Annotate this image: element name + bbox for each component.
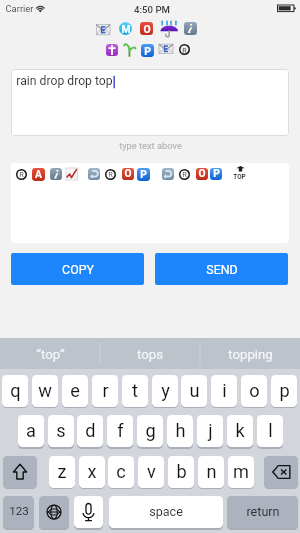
- staticText: P: [213, 168, 220, 180]
- staticText: d: [85, 420, 96, 441]
- staticText: type text above: [119, 140, 182, 151]
- button[interactable]: y: [152, 375, 178, 407]
- button[interactable]: Shift: [3, 456, 37, 488]
- staticText: b: [176, 461, 187, 482]
- staticText: f: [117, 420, 124, 441]
- button[interactable]: n: [198, 456, 224, 488]
- staticText: t: [132, 380, 138, 401]
- button[interactable]: v: [138, 456, 164, 488]
- button[interactable]: b: [168, 456, 194, 488]
- button[interactable]: space: [109, 496, 223, 528]
- staticText: SEND: [206, 262, 238, 277]
- button[interactable]: h: [167, 415, 193, 447]
- button[interactable]: m: [228, 456, 254, 488]
- staticText: space: [149, 504, 183, 519]
- button[interactable]: return: [227, 496, 298, 528]
- staticText: R: [108, 170, 113, 179]
- staticText: i: [222, 380, 227, 401]
- button[interactable]: j: [197, 415, 223, 447]
- staticText: topping: [228, 347, 273, 362]
- button[interactable]: [11, 69, 289, 136]
- staticText: m: [233, 461, 249, 482]
- button[interactable]: Dictate: [74, 496, 103, 528]
- button[interactable]: SEND: [155, 253, 288, 285]
- staticText: o: [249, 380, 260, 401]
- staticText: R: [19, 170, 24, 179]
- staticText: A: [35, 169, 42, 181]
- staticText: q: [10, 380, 21, 401]
- staticText: a: [26, 420, 36, 441]
- staticText: p: [279, 380, 290, 401]
- staticText: e: [70, 380, 80, 401]
- staticText: l: [268, 420, 273, 441]
- button[interactable]: Change keyboard: [39, 496, 69, 528]
- button[interactable]: c: [108, 456, 134, 488]
- button[interactable]: q: [2, 375, 28, 407]
- staticText: O: [198, 168, 206, 180]
- button[interactable]: z: [49, 456, 75, 488]
- button[interactable]: COPY: [11, 253, 144, 285]
- staticText: y: [161, 380, 170, 401]
- staticText: k: [235, 420, 245, 441]
- button[interactable]: [11, 163, 289, 243]
- button[interactable]: f: [107, 415, 133, 447]
- staticText: c: [116, 461, 126, 482]
- button[interactable]: g: [137, 415, 163, 447]
- staticText: u: [189, 380, 200, 401]
- staticText: n: [206, 461, 217, 482]
- staticText: v: [147, 461, 156, 482]
- staticText: w: [38, 380, 52, 401]
- button[interactable]: t: [122, 375, 148, 407]
- staticText: TOP: [233, 173, 246, 181]
- staticText: O: [143, 23, 151, 35]
- button[interactable]: Backspace: [264, 456, 298, 488]
- button[interactable]: o: [241, 375, 267, 407]
- staticText: rain drop drop top: [16, 74, 113, 88]
- staticText: tops: [137, 347, 163, 362]
- staticText: “top”: [36, 347, 65, 362]
- staticText: P: [140, 169, 147, 181]
- button[interactable]: x: [79, 456, 105, 488]
- button[interactable]: 123: [3, 496, 34, 528]
- staticText: j: [208, 420, 213, 441]
- button[interactable]: s: [48, 415, 74, 447]
- button[interactable]: k: [227, 415, 253, 447]
- button[interactable]: a: [18, 415, 44, 447]
- staticText: g: [145, 420, 156, 441]
- button[interactable]: p: [271, 375, 297, 407]
- staticText: 123: [9, 504, 29, 518]
- staticText: 4:50 PM: [134, 4, 170, 15]
- staticText: z: [57, 461, 67, 482]
- staticText: r: [102, 380, 109, 401]
- staticText: x: [87, 461, 97, 482]
- staticText: Carrier: [5, 3, 34, 14]
- button[interactable]: l: [257, 415, 283, 447]
- button[interactable]: u: [181, 375, 207, 407]
- staticText: O: [124, 168, 132, 180]
- staticText: s: [56, 420, 66, 441]
- staticText: P: [144, 45, 151, 57]
- button[interactable]: d: [77, 415, 103, 447]
- staticText: h: [175, 420, 186, 441]
- staticText: M: [121, 23, 131, 35]
- staticText: COPY: [62, 262, 94, 277]
- staticText: return: [246, 504, 280, 519]
- staticText: R: [182, 46, 187, 54]
- staticText: R: [182, 170, 187, 179]
- button[interactable]: r: [92, 375, 118, 407]
- button[interactable]: w: [32, 375, 58, 407]
- button[interactable]: e: [62, 375, 88, 407]
- button[interactable]: i: [211, 375, 237, 407]
